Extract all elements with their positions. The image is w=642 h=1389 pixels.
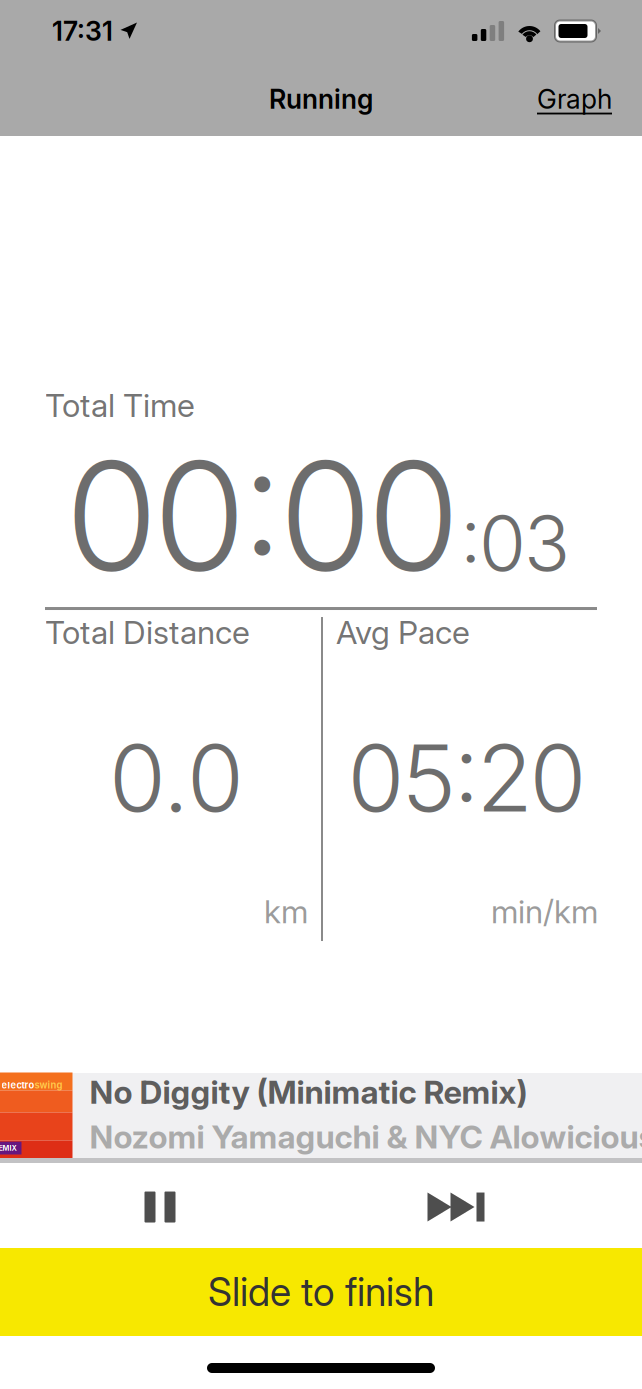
staticText: electro [1,1079,34,1091]
staticText: min/km [491,892,598,931]
button[interactable]: Slide to finish [0,1248,642,1336]
staticText: Total Distance [45,613,250,652]
staticText: Slide to finish [208,1269,434,1315]
staticText: Total Time [45,386,195,425]
staticText: 00:00 [65,425,460,607]
staticText: No Diggity (Minimatic Remix) [89,1073,527,1111]
staticText: 0.0 [109,722,244,834]
button[interactable]: Pause [105,1166,215,1248]
staticText: 05:20 [347,722,586,834]
button[interactable]: electro [0,1073,642,1158]
staticText: :03 [460,497,570,589]
staticText: Avg Pace [336,613,470,652]
staticText: swing [34,1079,62,1091]
staticText: REMIX [0,1144,16,1152]
staticText: Nozomi Yamaguchi & NYC Alowicious [89,1117,642,1156]
staticText: Running [269,83,373,115]
staticText: 17:31 [52,15,113,47]
staticText: Graph [537,83,612,115]
button[interactable]: Graph [529,73,620,125]
button[interactable]: Next track [401,1166,511,1248]
staticText: km [264,892,308,931]
